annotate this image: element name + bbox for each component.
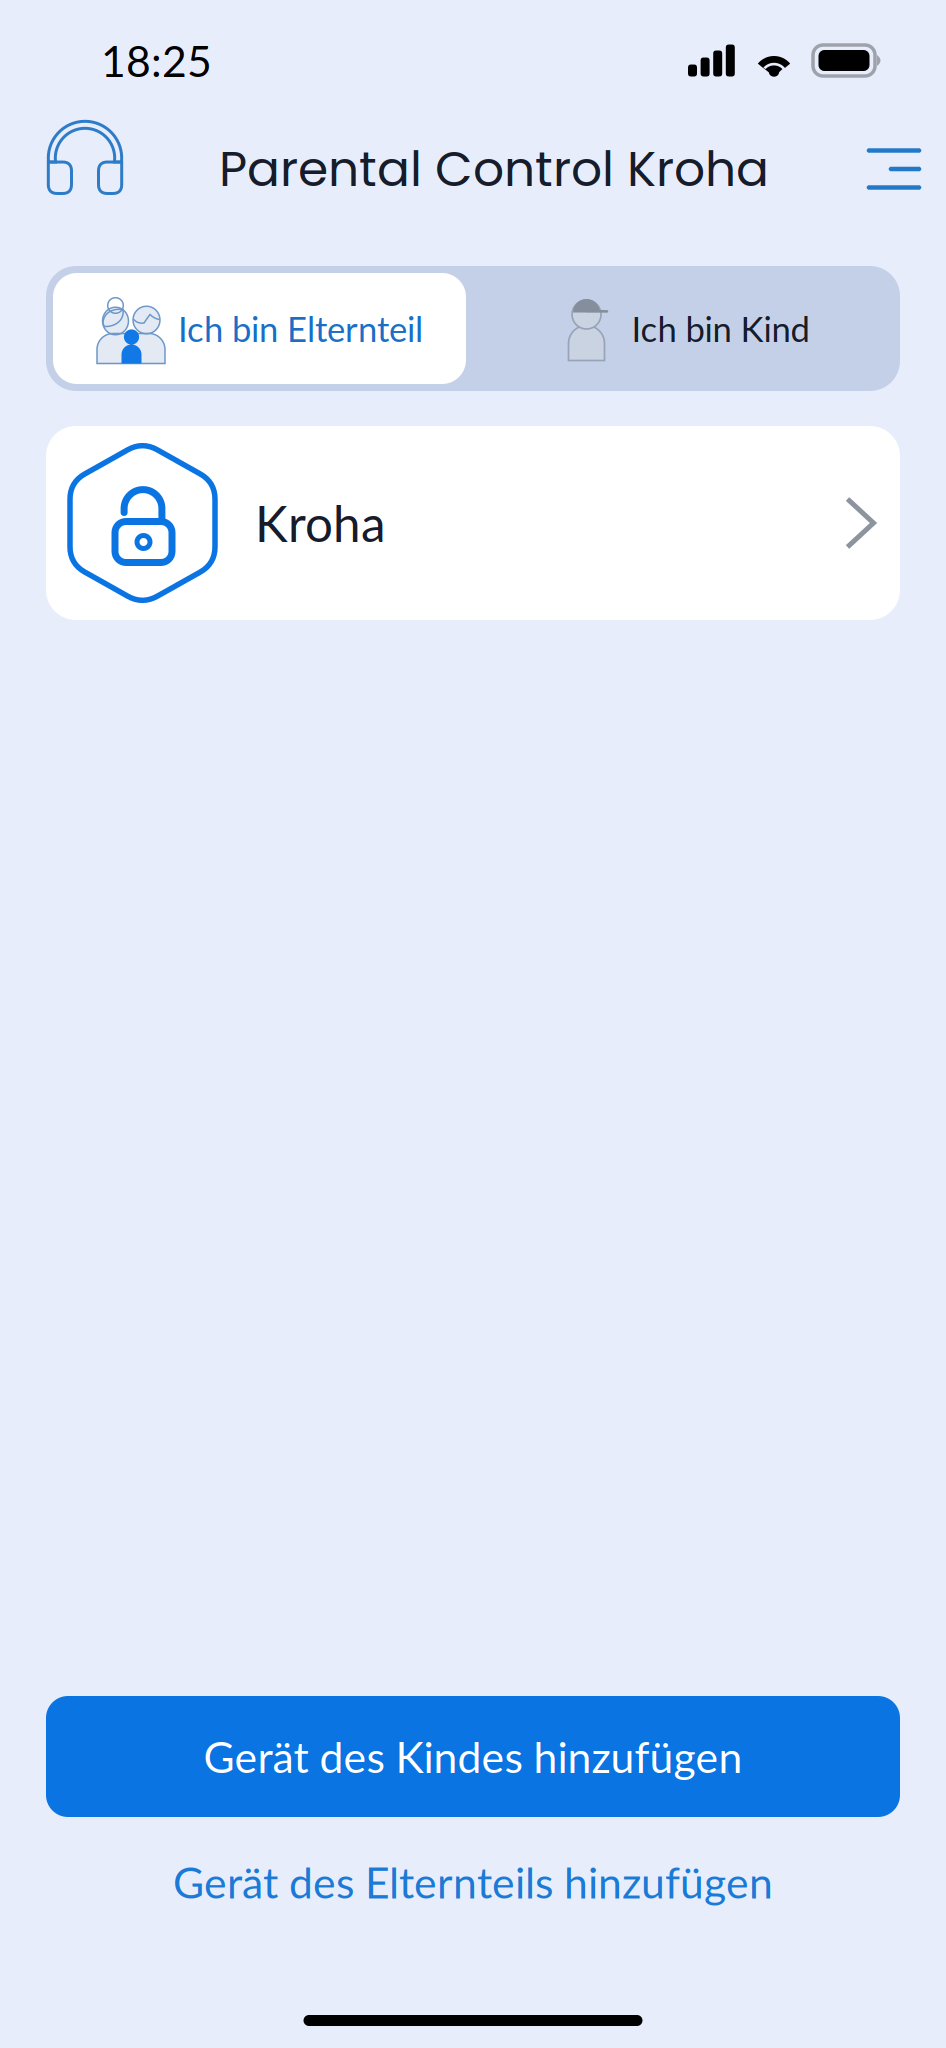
staticText: Gerät des Elternteils hinzufügen (173, 1856, 773, 1908)
button[interactable]: Ich bin Elternteil (46, 266, 473, 391)
staticText: Ich bin Kind (631, 308, 809, 349)
button[interactable]: Kroha (0, 426, 946, 620)
button[interactable]: Gerät des Kindes hinzufügen (0, 1696, 946, 1817)
button[interactable]: Support (40, 112, 130, 226)
staticText: Parental Control Kroha (219, 135, 769, 203)
staticText: 18:25 (101, 35, 212, 86)
button[interactable]: Ich bin Kind (473, 266, 900, 391)
staticText: Kroha (255, 493, 386, 553)
staticText: Ich bin Elternteil (178, 308, 423, 349)
button[interactable]: Gerät des Elternteils hinzufügen (0, 1847, 946, 1917)
button[interactable]: Menu (858, 134, 930, 204)
staticText: Gerät des Kindes hinzufügen (203, 1731, 742, 1782)
